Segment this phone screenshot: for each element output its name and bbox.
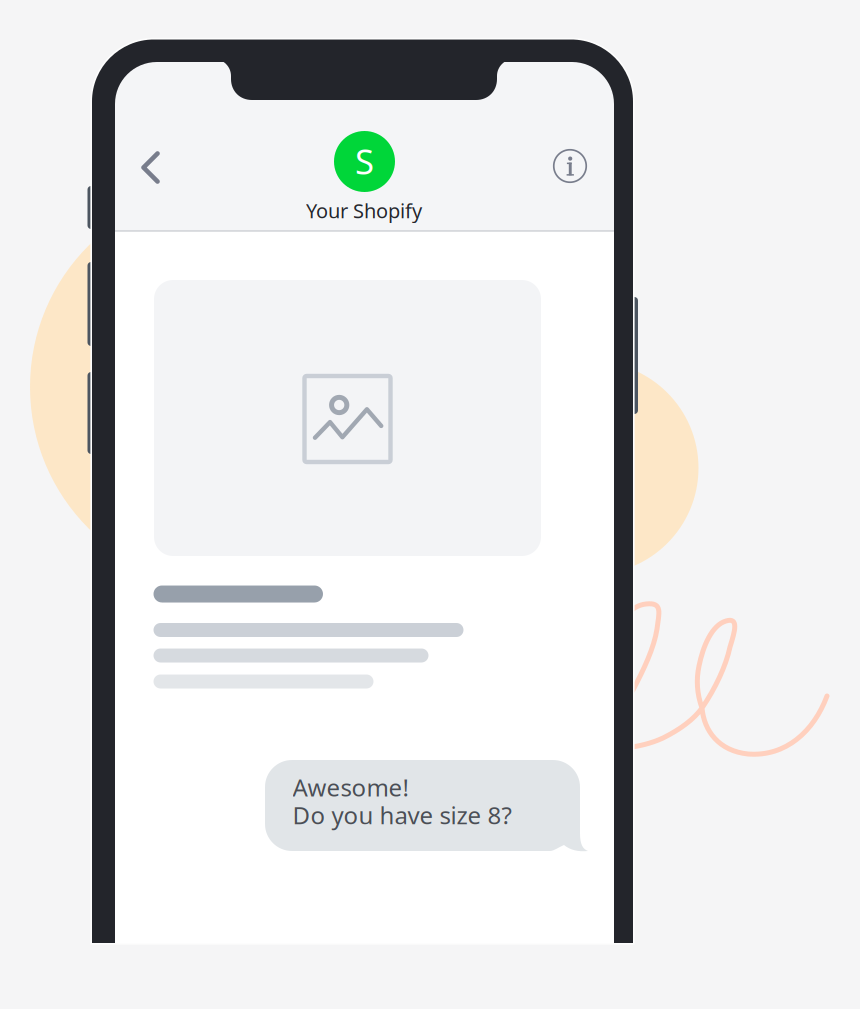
staticText: Do you have size 8? bbox=[292, 799, 511, 831]
button[interactable]: Conversation info bbox=[0, 0, 860, 1009]
staticText: S bbox=[355, 138, 374, 184]
button[interactable]: S bbox=[0, 0, 860, 1009]
button[interactable]: Product image bbox=[0, 0, 860, 1009]
staticText: Awesome! bbox=[292, 771, 408, 803]
button[interactable]: Back bbox=[0, 0, 860, 1009]
staticText: Your Shopify bbox=[306, 197, 422, 224]
